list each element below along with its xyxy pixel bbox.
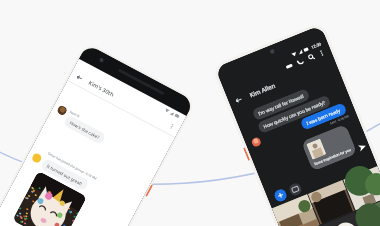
staticText: Omar has joined the group · 4:18 PM bbox=[47, 151, 97, 181]
button[interactable]: More options bbox=[317, 48, 326, 58]
button[interactable]: Send bbox=[357, 142, 368, 152]
staticText: Kim's 30th bbox=[87, 79, 116, 99]
staticText: Kim Allen bbox=[248, 81, 277, 99]
staticText: I'm way tall for Hawaii! bbox=[257, 93, 305, 116]
staticText: How's the cake? bbox=[69, 119, 101, 140]
button[interactable] bbox=[12, 171, 87, 226]
staticText: I was born ready bbox=[305, 107, 342, 126]
button[interactable]: I was born ready bbox=[300, 102, 348, 131]
staticText: Sent · 4:18 PM bbox=[329, 114, 349, 125]
button[interactable]: How quickly can you be ready? bbox=[257, 95, 332, 134]
button[interactable]: Back bbox=[227, 55, 338, 110]
button[interactable]: Add attachment bbox=[273, 188, 288, 203]
button[interactable]: How's the cake? bbox=[63, 114, 106, 145]
staticText: How quickly can you be ready? bbox=[262, 99, 326, 129]
button[interactable]: More options bbox=[168, 122, 176, 130]
button[interactable] bbox=[343, 166, 380, 210]
button[interactable]: Back bbox=[68, 66, 183, 137]
staticText: It turned out great! bbox=[46, 163, 84, 187]
button[interactable] bbox=[356, 197, 380, 226]
button[interactable] bbox=[308, 180, 355, 225]
staticText: Sean B bbox=[69, 110, 81, 119]
other: Back bbox=[75, 73, 84, 82]
button[interactable]: Some inspiration for you bbox=[301, 124, 357, 171]
button[interactable]: Call bbox=[296, 57, 305, 66]
staticText: Some inspiration for you bbox=[313, 147, 352, 166]
button[interactable]: I'm way tall for Hawaii! bbox=[251, 88, 311, 121]
button[interactable]: Gallery bbox=[288, 182, 303, 197]
button[interactable]: Messages bbox=[285, 62, 294, 71]
button[interactable] bbox=[321, 212, 368, 226]
button[interactable] bbox=[272, 194, 319, 226]
button[interactable]: It turned out great! bbox=[40, 158, 90, 192]
other: Back bbox=[234, 95, 244, 105]
button[interactable]: Search bbox=[307, 53, 316, 62]
staticText: 12:30 bbox=[310, 41, 323, 50]
